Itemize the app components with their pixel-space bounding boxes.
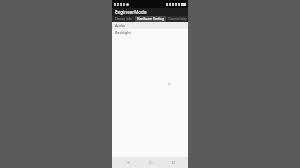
staticText: EngineerMode: [115, 9, 147, 15]
button[interactable]: Backlight: [112, 29, 188, 36]
button[interactable]: Device info: [112, 16, 135, 22]
button[interactable]: EngineerMode: [112, 8, 188, 16]
button[interactable]: Hardware Testing: [135, 16, 166, 22]
staticText: Connectivity: [168, 17, 187, 21]
staticText: Hardware Testing: [137, 17, 164, 21]
button[interactable]: Back: [121, 157, 135, 168]
staticText: Backlight: [115, 30, 131, 35]
staticText: Audio: [115, 23, 126, 28]
button[interactable]: Audio: [112, 22, 188, 29]
button[interactable]: Connectivity: [166, 16, 188, 22]
staticText: Device info: [115, 17, 132, 21]
button[interactable]: Recent apps: [166, 157, 180, 168]
button[interactable]: Home: [143, 157, 157, 168]
